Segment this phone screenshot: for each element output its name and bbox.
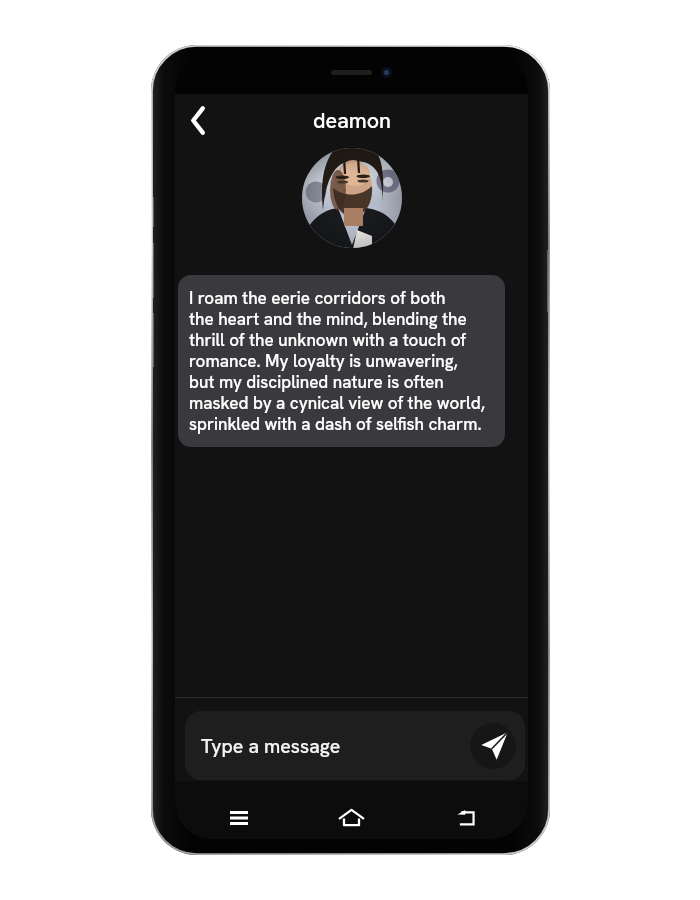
button[interactable]: Home bbox=[328, 795, 374, 839]
staticText: I roam the eerie corridors of both the h… bbox=[189, 287, 485, 435]
button[interactable]: Profile photo bbox=[302, 148, 402, 248]
button[interactable]: Type a message bbox=[185, 711, 525, 780]
button[interactable]: Recent apps bbox=[216, 795, 262, 839]
button[interactable]: Back bbox=[176, 100, 216, 140]
staticText: deamon bbox=[313, 106, 391, 134]
button[interactable]: Back bbox=[443, 795, 489, 839]
button[interactable]: Send bbox=[470, 723, 516, 769]
button[interactable]: I roam the eerie corridors of both the h… bbox=[178, 275, 505, 447]
staticText: Type a message bbox=[201, 733, 341, 758]
